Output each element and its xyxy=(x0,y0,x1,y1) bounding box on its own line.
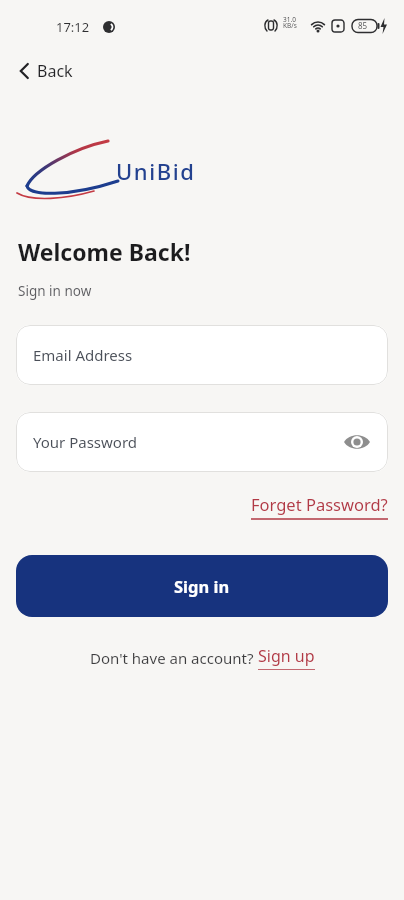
staticText: Email Address xyxy=(33,345,133,365)
button[interactable]: Email Address xyxy=(16,325,388,385)
staticText: 85 xyxy=(358,20,368,31)
staticText: Forget Password? xyxy=(251,493,388,515)
button[interactable]: Your Password xyxy=(16,412,388,472)
button[interactable]: Back xyxy=(14,56,77,86)
staticText: Your Password xyxy=(33,432,138,452)
staticText: Welcome Back! xyxy=(18,236,191,267)
staticText: 17:12 xyxy=(56,18,90,36)
button[interactable]: Sign up xyxy=(258,645,315,670)
button[interactable]: Sign in xyxy=(16,555,388,617)
staticText: Don't have an account? xyxy=(90,648,258,668)
staticText: Sign in now xyxy=(18,282,92,300)
button[interactable]: Forget Password? xyxy=(251,493,388,520)
staticText: Sign up xyxy=(258,645,315,667)
staticText: UniBid xyxy=(116,156,196,186)
staticText: Back xyxy=(37,60,73,82)
staticText: Sign in xyxy=(174,575,230,597)
staticText: 31.0 KB/s xyxy=(283,15,297,30)
